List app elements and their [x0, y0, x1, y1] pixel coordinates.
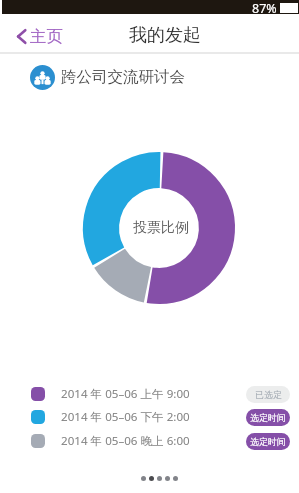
- staticText: 跨公司交流研讨会: [61, 67, 185, 87]
- staticText: 87%: [252, 0, 277, 14]
- staticText: 主页: [30, 26, 63, 47]
- staticText: 2014 年 05–06 晚上 6:00: [61, 433, 190, 449]
- button[interactable]: 主页: [13, 23, 67, 50]
- staticText: 选定时间: [250, 436, 286, 447]
- button[interactable]: 已选定: [246, 386, 290, 403]
- staticText: 我的发起: [129, 24, 201, 47]
- staticText: 2014 年 05–06 下午 2:00: [61, 409, 190, 425]
- staticText: 已选定: [255, 389, 282, 400]
- staticText: 投票比例: [133, 219, 189, 237]
- button[interactable]: 选定时间: [246, 409, 290, 426]
- staticText: 2014 年 05–06 上午 9:00: [61, 386, 190, 402]
- staticText: 选定时间: [250, 412, 286, 423]
- button[interactable]: 跨公司交流研讨会: [0, 62, 299, 92]
- button[interactable]: 选定时间: [246, 433, 290, 450]
